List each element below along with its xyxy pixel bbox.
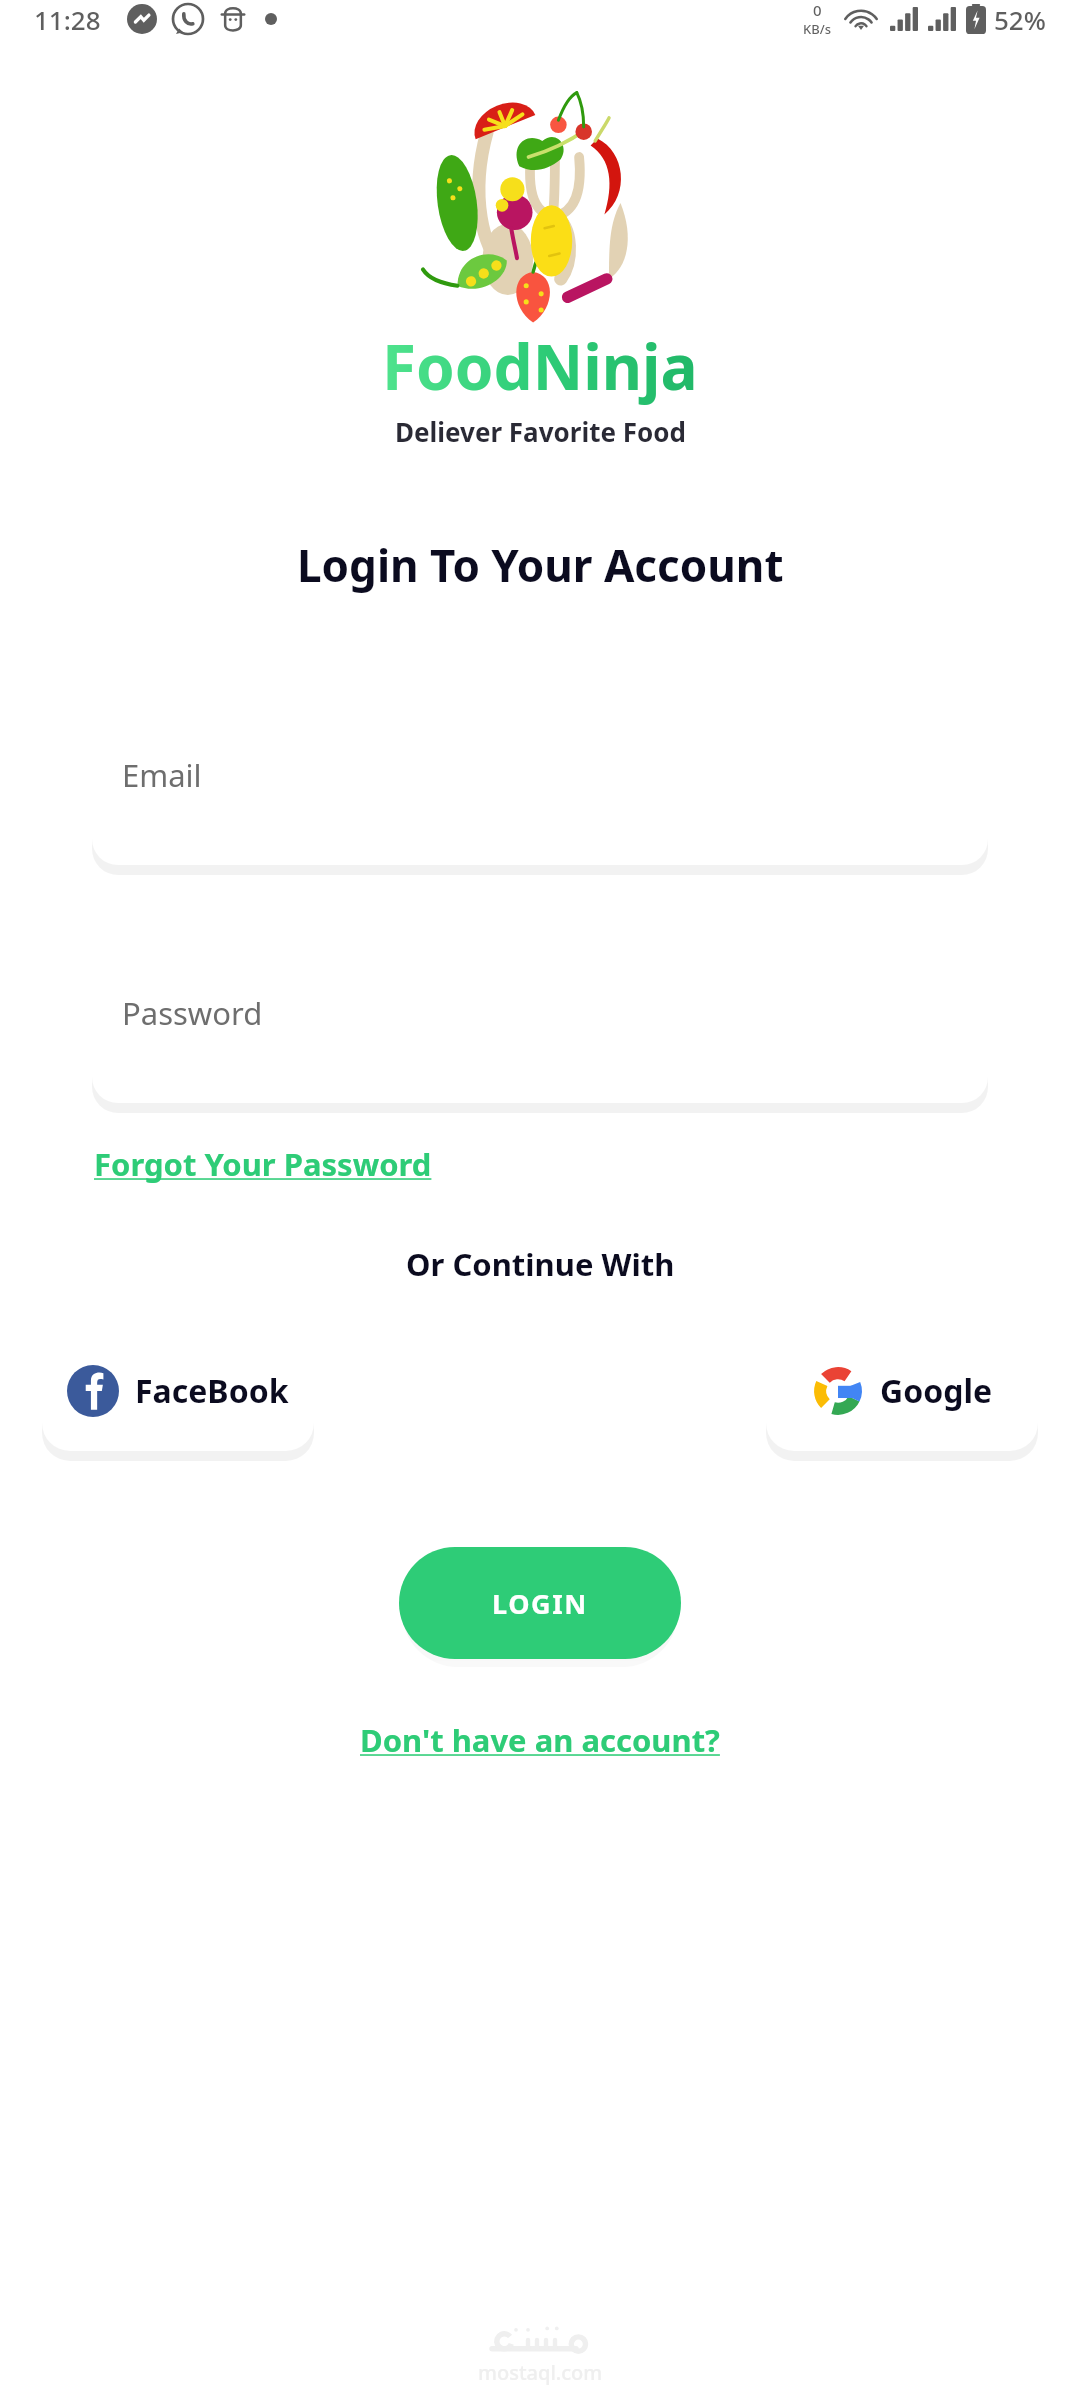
staticText: KB/s — [803, 20, 832, 38]
button[interactable]: LOGIN — [399, 1547, 681, 1659]
staticText: 52% — [994, 2, 1046, 37]
staticText: Forgot Your Password — [94, 1143, 432, 1185]
staticText: LOGIN — [492, 1585, 588, 1622]
staticText: FaceBook — [135, 1369, 289, 1413]
staticText: 0 — [813, 0, 822, 20]
button[interactable]: Don't have an account? — [356, 1715, 724, 1765]
button[interactable]: FaceBook — [42, 1331, 314, 1451]
staticText: Or Continue With — [406, 1243, 675, 1285]
staticText: Email — [122, 754, 202, 796]
staticText: FoodNinja — [382, 324, 698, 408]
staticText: mostaql.com — [478, 2359, 603, 2386]
button[interactable]: Google — [766, 1331, 1038, 1451]
staticText: Don't have an account? — [360, 1719, 720, 1761]
staticText: Login To Your Account — [297, 535, 784, 595]
button[interactable]: Email — [92, 685, 988, 865]
button[interactable]: Password — [92, 923, 988, 1103]
staticText: Google — [880, 1369, 993, 1413]
staticText: Password — [122, 992, 263, 1034]
staticText: 11:28 — [34, 2, 101, 37]
staticText: Deliever Favorite Food — [395, 414, 686, 449]
button[interactable]: Forgot Your Password — [92, 1137, 434, 1191]
